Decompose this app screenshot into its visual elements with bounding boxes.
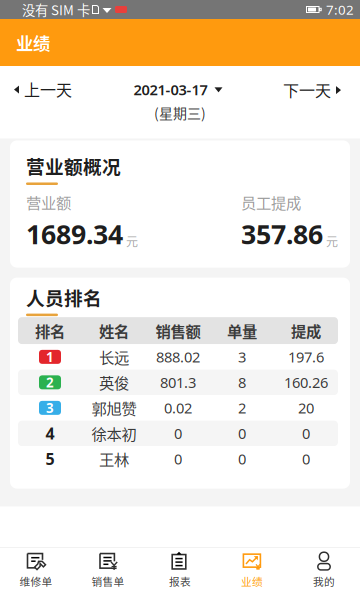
staticText: 0.02: [164, 398, 192, 418]
staticText: 营业额概况: [26, 152, 121, 179]
button[interactable]: 5: [18, 446, 338, 472]
staticText: 8: [238, 373, 246, 392]
staticText: 1689.34: [26, 216, 123, 252]
button[interactable]: 2: [18, 370, 338, 395]
staticText: 员工提成: [241, 191, 301, 213]
staticText: 英俊: [99, 371, 129, 393]
staticText: 营业额: [26, 191, 71, 213]
staticText: 销售额: [155, 319, 200, 342]
staticText: 上一天: [24, 77, 72, 101]
staticText: 长远: [99, 346, 129, 368]
button[interactable]: 上一天: [0, 77, 82, 102]
staticText: 3: [238, 347, 246, 367]
staticText: 20: [298, 398, 314, 418]
staticText: 197.6: [288, 347, 324, 367]
staticText: 徐本初: [91, 422, 136, 444]
staticText: 4: [45, 423, 54, 444]
button[interactable]: 销售单: [72, 547, 144, 600]
staticText: 元: [326, 232, 338, 250]
staticText: 7:02: [326, 1, 354, 18]
staticText: 王林: [99, 448, 129, 470]
button[interactable]: 我的: [288, 547, 360, 600]
staticText: 1: [46, 348, 54, 366]
staticText: 排名: [35, 319, 65, 342]
staticText: 销售单: [91, 573, 124, 589]
staticText: 业绩: [16, 30, 50, 55]
staticText: 业绩: [241, 573, 263, 589]
staticText: 我的: [313, 573, 335, 589]
staticText: 888.02: [156, 347, 200, 367]
button[interactable]: 报表: [144, 547, 216, 600]
staticText: 801.3: [160, 373, 196, 392]
staticText: 下一天: [283, 78, 331, 101]
button[interactable]: 业绩: [216, 547, 288, 600]
staticText: 郭旭赞: [91, 397, 136, 419]
staticText: 5: [45, 448, 54, 469]
staticText: 单量: [227, 319, 257, 342]
staticText: 姓名: [99, 319, 129, 342]
staticText: 人员排名: [26, 284, 102, 311]
staticText: (星期三): [154, 102, 206, 122]
button[interactable]: 维修单: [0, 547, 72, 600]
staticText: 0: [302, 424, 310, 443]
staticText: 2: [238, 398, 246, 418]
staticText: 357.86: [241, 216, 323, 252]
staticText: 2: [46, 373, 54, 391]
button[interactable]: 4: [18, 421, 338, 446]
button[interactable]: 下一天: [273, 77, 360, 102]
staticText: 0: [302, 449, 310, 469]
button[interactable]: 3: [18, 395, 338, 421]
staticText: 提成: [291, 319, 321, 342]
staticText: 0: [174, 449, 182, 469]
staticText: 维修单: [19, 573, 52, 589]
staticText: 报表: [169, 573, 191, 589]
staticText: 2021-03-17: [133, 80, 207, 99]
staticText: 元: [126, 232, 138, 250]
staticText: 0: [174, 424, 182, 443]
staticText: 160.26: [284, 373, 328, 392]
staticText: 没有 SIM 卡: [22, 0, 90, 19]
staticText: 3: [46, 399, 54, 417]
staticText: 0: [238, 424, 246, 443]
staticText: 0: [238, 449, 246, 469]
button[interactable]: 1: [18, 344, 338, 370]
button[interactable]: 2021-03-17: [125, 79, 229, 100]
